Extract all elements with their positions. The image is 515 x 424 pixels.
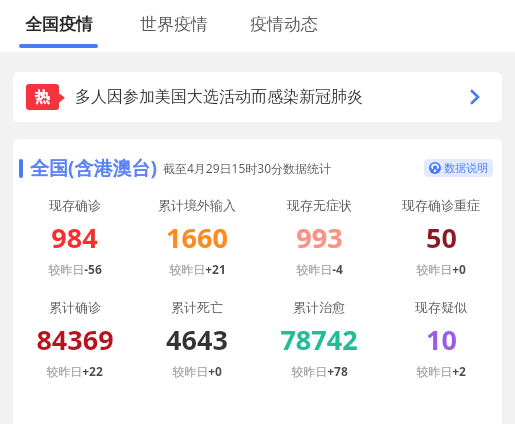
staticText: 较昨日-56 (48, 261, 102, 277)
staticText: 较昨日-4 (296, 261, 343, 277)
staticText: 较昨日+22 (46, 363, 103, 379)
staticText: 全国疫情 (25, 14, 93, 35)
staticText: 4643 (166, 321, 228, 358)
staticText: 78742 (280, 321, 358, 358)
staticText: 50 (426, 219, 457, 256)
staticText: 累计确诊 (49, 299, 101, 315)
staticText: 数据说明 (444, 161, 488, 175)
other: 查看详情 (466, 87, 486, 107)
staticText: 全国(含港澳台) (30, 155, 157, 181)
staticText: 较昨日+0 (416, 261, 466, 277)
button[interactable]: 累计治愈 (258, 299, 380, 379)
staticText: 现存无症状 (287, 197, 352, 213)
staticText: 较昨日+21 (169, 261, 226, 277)
button[interactable]: 累计境外输入 (136, 197, 258, 277)
button[interactable]: 世界疫情 (138, 0, 210, 44)
staticText: 累计境外输入 (158, 197, 236, 213)
button[interactable]: 全国疫情 (17, 0, 100, 48)
staticText: 多人因参加美国大选活动而感染新冠肺炎 (75, 87, 363, 107)
staticText: 世界疫情 (140, 14, 208, 35)
button[interactable]: 现存确诊 (13, 197, 136, 277)
staticText: 10 (426, 321, 457, 358)
button[interactable]: 累计死亡 (136, 299, 258, 379)
staticText: 较昨日+2 (416, 363, 466, 379)
staticText: 较昨日+78 (291, 363, 348, 379)
staticText: 累计死亡 (171, 299, 223, 315)
button[interactable]: 现存无症状 (258, 197, 380, 277)
button[interactable]: 疫情动态 (248, 0, 320, 44)
button[interactable]: 数据说明 (424, 159, 493, 177)
staticText: 截至4月29日15时30分数据统计 (163, 160, 332, 176)
staticText: 现存确诊重症 (402, 197, 480, 213)
button[interactable]: 累计确诊 (13, 299, 136, 379)
staticText: 1660 (166, 219, 228, 256)
staticText: 984 (51, 219, 98, 256)
staticText: 现存疑似 (415, 299, 467, 315)
button[interactable]: 现存确诊重症 (380, 197, 502, 277)
staticText: 热 (35, 88, 50, 107)
button[interactable]: 现存疑似 (380, 299, 502, 379)
button[interactable]: 热 (13, 72, 502, 122)
staticText: 993 (296, 219, 343, 256)
staticText: 疫情动态 (250, 14, 318, 35)
staticText: 累计治愈 (293, 299, 345, 315)
staticText: 较昨日+0 (172, 363, 222, 379)
staticText: 现存确诊 (49, 197, 101, 213)
staticText: 84369 (36, 321, 114, 358)
